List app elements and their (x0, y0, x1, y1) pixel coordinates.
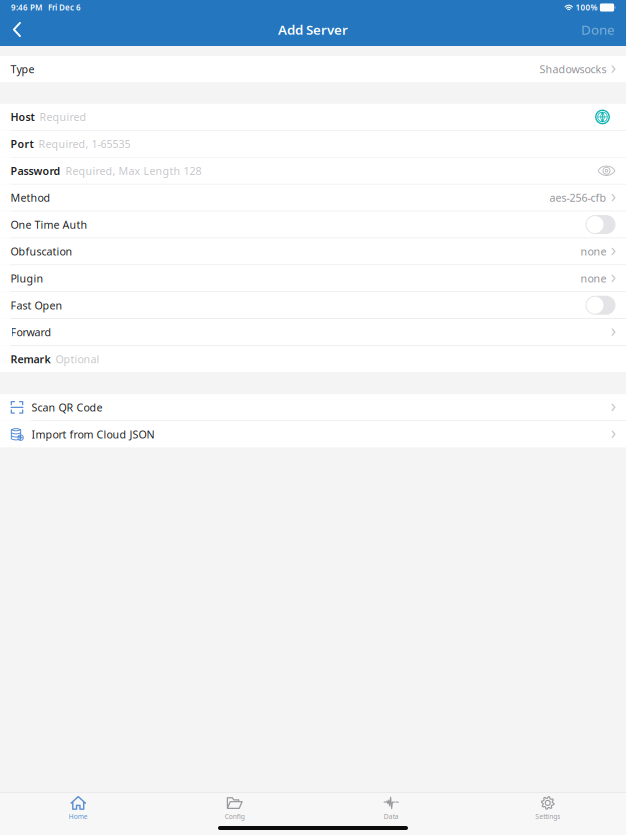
button[interactable]: Scan QR Code (0, 394, 626, 420)
staticText: Forward (10, 325, 51, 339)
staticText: One Time Auth (10, 217, 87, 232)
button[interactable]: Home (0, 793, 156, 823)
button[interactable]: Back (0, 15, 34, 43)
button[interactable]: Type (0, 56, 626, 82)
staticText: Obfuscation (10, 244, 72, 259)
staticText: none (581, 244, 607, 259)
staticText: Settings (535, 812, 560, 821)
button[interactable]: Settings (469, 793, 626, 823)
staticText: Required, 1-65535 (38, 137, 130, 151)
staticText: Import from Cloud JSON (31, 427, 154, 441)
button[interactable]: Config (156, 793, 313, 823)
staticText: Data (384, 812, 399, 821)
staticText: Type (10, 62, 34, 76)
staticText: Fri Dec 6 (42, 2, 81, 13)
staticText: Port (10, 137, 33, 151)
button[interactable]: Password (0, 158, 626, 184)
button[interactable]: Plugin (0, 265, 626, 291)
button[interactable]: Method (0, 184, 626, 211)
staticText: none (581, 271, 607, 285)
staticText: Password (10, 164, 60, 178)
staticText: Optional (55, 352, 99, 366)
button[interactable]: Done (570, 15, 626, 43)
staticText: 100% (575, 2, 597, 13)
button[interactable]: Fast Open (0, 292, 626, 318)
staticText: Required (39, 110, 86, 124)
button[interactable]: Port (0, 131, 626, 157)
staticText: 9:46 PM (11, 2, 42, 13)
button[interactable]: One Time Auth (0, 211, 626, 238)
button[interactable]: Forward (0, 319, 626, 345)
staticText: Remark (10, 352, 50, 366)
staticText: Fast Open (10, 298, 62, 312)
button[interactable]: Remark (0, 346, 626, 372)
staticText: Required, Max Length 128 (65, 164, 201, 178)
staticText: Shadowsocks (540, 62, 607, 76)
button[interactable]: Obfuscation (0, 238, 626, 265)
staticText: Scan QR Code (31, 400, 102, 414)
button[interactable]: Data (313, 793, 469, 823)
staticText: Host (10, 110, 34, 124)
button[interactable]: Host (0, 104, 626, 130)
staticText: Home (69, 812, 88, 821)
staticText: Add Server (278, 21, 348, 38)
staticText: Done (581, 21, 615, 38)
staticText: Plugin (10, 271, 43, 285)
button[interactable]: Import from Cloud JSON (0, 421, 626, 447)
staticText: Method (10, 191, 50, 205)
staticText: aes-256-cfb (550, 191, 607, 205)
staticText: Config (225, 812, 245, 821)
